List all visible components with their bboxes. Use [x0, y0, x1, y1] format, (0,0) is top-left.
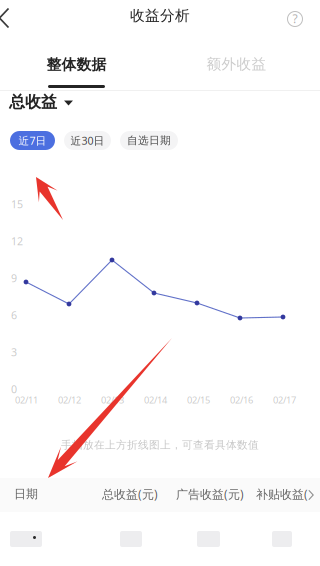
button[interactable]: 整体数据	[0, 55, 153, 89]
staticText: 3	[11, 345, 17, 359]
button[interactable]: 额外收益	[153, 55, 320, 89]
staticText: 自选日期	[127, 134, 171, 147]
button[interactable]: 自选日期	[120, 131, 178, 150]
staticText: 0	[11, 382, 17, 396]
button[interactable]: 帮助	[284, 9, 306, 29]
button[interactable]: 总收益	[0, 92, 320, 112]
button[interactable]: 近7日	[10, 131, 55, 150]
staticText: 近7日	[18, 133, 46, 148]
staticText: 手指放在上方折线图上，可查看具体数值	[61, 438, 259, 451]
staticText: 整体数据	[46, 55, 106, 73]
staticText: 额外收益	[206, 55, 266, 73]
staticText: 12	[11, 234, 23, 248]
staticText: 总收益(元)	[102, 486, 158, 502]
staticText: 日期	[14, 487, 38, 501]
staticText: 总收益	[9, 92, 57, 112]
staticText: 02/17	[273, 394, 296, 406]
staticText: 9	[11, 271, 17, 285]
staticText: 收益分析	[130, 6, 190, 24]
button[interactable]: 更多列	[306, 488, 316, 502]
staticText: 02/16	[230, 394, 253, 406]
button[interactable]: 返回	[0, 5, 25, 31]
staticText: 02/14	[144, 394, 167, 406]
staticText: 02/11	[15, 394, 38, 406]
button[interactable]: 近30日	[64, 131, 111, 150]
staticText: 02/15	[187, 394, 210, 406]
staticText: 6	[11, 308, 17, 322]
staticText: 补贴收益(	[256, 486, 308, 502]
staticText: 02/12	[58, 394, 81, 406]
staticText: 近30日	[70, 133, 104, 148]
staticText: ?	[292, 10, 297, 26]
staticText: 02/13	[101, 394, 124, 406]
staticText: 15	[11, 197, 23, 211]
staticText: 广告收益(元)	[176, 486, 244, 502]
